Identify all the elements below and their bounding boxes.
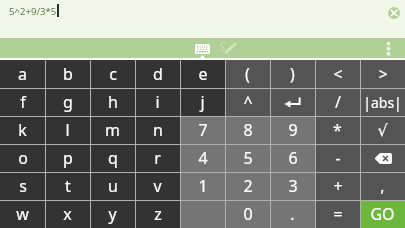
button[interactable]: d <box>135 60 180 88</box>
staticText: o <box>18 147 28 169</box>
button[interactable]: ( <box>225 60 270 88</box>
button[interactable]: / <box>315 88 360 116</box>
staticText: a <box>18 63 27 85</box>
staticText: 5^2+9/3*5 <box>9 5 57 18</box>
button[interactable]: e <box>180 60 225 88</box>
button[interactable]: g <box>45 88 90 116</box>
staticText: x <box>63 203 72 225</box>
button[interactable]: q <box>90 144 135 172</box>
button[interactable]: n <box>135 116 180 144</box>
button[interactable]: h <box>90 88 135 116</box>
staticText: s <box>19 175 27 197</box>
button[interactable]: Handwriting input <box>220 41 237 54</box>
staticText: < <box>333 63 343 85</box>
staticText: * <box>333 119 342 141</box>
staticText: , <box>380 175 385 197</box>
button[interactable]: Clear input <box>388 7 400 19</box>
button[interactable]: p <box>45 144 90 172</box>
button[interactable]: w <box>0 200 45 228</box>
button[interactable]: . <box>270 200 315 228</box>
button[interactable]: Keyboard input <box>195 44 210 54</box>
button[interactable]: = <box>315 200 360 228</box>
button[interactable]: 5 <box>225 144 270 172</box>
button[interactable]: t <box>45 172 90 200</box>
button[interactable]: 4 <box>180 144 225 172</box>
staticText: l <box>65 119 70 141</box>
button[interactable]: v <box>135 172 180 200</box>
staticText: 6 <box>288 147 298 169</box>
staticText: g <box>63 91 73 113</box>
staticText: 2 <box>243 175 253 197</box>
staticText: ^ <box>243 91 253 113</box>
button[interactable]: More options <box>383 38 395 58</box>
staticText: - <box>335 147 341 169</box>
button[interactable]: l <box>45 116 90 144</box>
button[interactable]: < <box>315 60 360 88</box>
button[interactable]: c <box>90 60 135 88</box>
button[interactable]: r <box>135 144 180 172</box>
button[interactable]: GO <box>360 200 405 228</box>
button[interactable]: 8 <box>225 116 270 144</box>
staticText: 1 <box>198 175 208 197</box>
staticText: 9 <box>288 119 298 141</box>
button[interactable]: y <box>90 200 135 228</box>
button[interactable]: x <box>45 200 90 228</box>
staticText: ( <box>245 63 250 85</box>
button[interactable]: * <box>315 116 360 144</box>
staticText: q <box>108 147 118 169</box>
button[interactable]: 0 <box>225 200 270 228</box>
staticText: m <box>105 119 120 141</box>
button[interactable]: Space <box>180 200 225 228</box>
staticText: = <box>333 203 343 225</box>
staticText: h <box>108 91 118 113</box>
button[interactable]: i <box>135 88 180 116</box>
staticText: √ <box>377 121 388 140</box>
button[interactable]: 9 <box>270 116 315 144</box>
button[interactable]: 6 <box>270 144 315 172</box>
staticText: p <box>63 147 73 169</box>
button[interactable]: 1 <box>180 172 225 200</box>
staticText: y <box>108 203 117 225</box>
staticText: ) <box>290 63 295 85</box>
button[interactable]: 3 <box>270 172 315 200</box>
button[interactable]: o <box>0 144 45 172</box>
staticText: 5 <box>243 147 253 169</box>
button[interactable]: ) <box>270 60 315 88</box>
button[interactable]: k <box>0 116 45 144</box>
staticText: e <box>198 63 208 85</box>
staticText: w <box>16 203 29 225</box>
staticText: 8 <box>243 119 253 141</box>
button[interactable]: j <box>180 88 225 116</box>
button[interactable]: b <box>45 60 90 88</box>
button[interactable]: , <box>360 172 405 200</box>
staticText: . <box>290 203 295 225</box>
button[interactable]: + <box>315 172 360 200</box>
button[interactable]: |abs| <box>360 88 405 116</box>
staticText: b <box>63 63 73 85</box>
staticText: / <box>335 91 341 113</box>
staticText: > <box>378 63 388 85</box>
button[interactable]: z <box>135 200 180 228</box>
staticText: 4 <box>198 147 208 169</box>
staticText: GO <box>370 203 395 225</box>
staticText: r <box>154 147 161 169</box>
staticText: 7 <box>198 119 208 141</box>
button[interactable]: - <box>315 144 360 172</box>
staticText: n <box>153 119 163 141</box>
button[interactable]: ^ <box>225 88 270 116</box>
button[interactable]: s <box>0 172 45 200</box>
button[interactable]: u <box>90 172 135 200</box>
staticText: 0 <box>243 203 253 225</box>
staticText: + <box>333 175 343 197</box>
button[interactable]: a <box>0 60 45 88</box>
button[interactable]: 2 <box>225 172 270 200</box>
button[interactable]: √ <box>360 116 405 144</box>
button[interactable]: Backspace <box>360 144 405 172</box>
staticText: i <box>155 91 160 113</box>
button[interactable]: Enter <box>270 88 315 116</box>
staticText: f <box>20 91 26 113</box>
button[interactable]: m <box>90 116 135 144</box>
button[interactable]: 7 <box>180 116 225 144</box>
button[interactable]: > <box>360 60 405 88</box>
button[interactable]: f <box>0 88 45 116</box>
